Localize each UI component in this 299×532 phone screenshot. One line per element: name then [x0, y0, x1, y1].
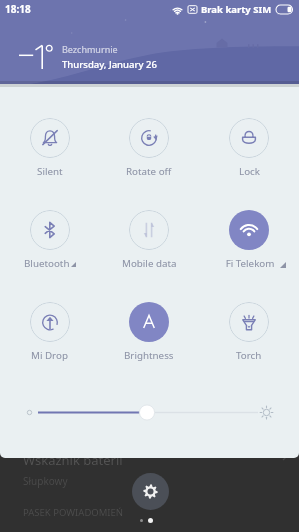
button[interactable]: Settings [132, 473, 169, 510]
button[interactable]: Bluetooth [0, 210, 99, 270]
button[interactable]: Fi Telekom [199, 210, 299, 270]
staticText: Brightness [124, 349, 174, 362]
staticText: 18:18 [5, 2, 31, 16]
button[interactable]: Mi Drop [0, 302, 99, 362]
button[interactable]: Lock [199, 118, 299, 178]
staticText: Torch [236, 349, 262, 362]
staticText: Thursday, January 26 [62, 58, 157, 71]
staticText: Rotate off [126, 165, 172, 178]
staticText: Fi Telekom [224, 257, 275, 270]
staticText: Bezchmurnie [62, 43, 118, 55]
staticText: Brak karty SIM [201, 3, 272, 16]
staticText: PASEK POWIADOMIEŃ [23, 506, 124, 519]
staticText: Mi Drop [31, 349, 68, 362]
staticText: Mobile data [122, 257, 177, 270]
staticText: Wskaźnik baterii [23, 451, 123, 469]
staticText: Słupkowy [23, 474, 68, 488]
staticText: Lock [239, 165, 260, 178]
staticText: Silent [37, 165, 63, 178]
button[interactable]: Rotate off [99, 118, 199, 178]
button[interactable]: Brightness [99, 302, 199, 362]
button[interactable]: Mobile data [99, 210, 199, 270]
staticText: Bluetooth [24, 257, 70, 270]
button[interactable] [0, 389, 299, 433]
button[interactable]: Silent [0, 118, 99, 178]
button[interactable]: Torch [199, 302, 299, 362]
